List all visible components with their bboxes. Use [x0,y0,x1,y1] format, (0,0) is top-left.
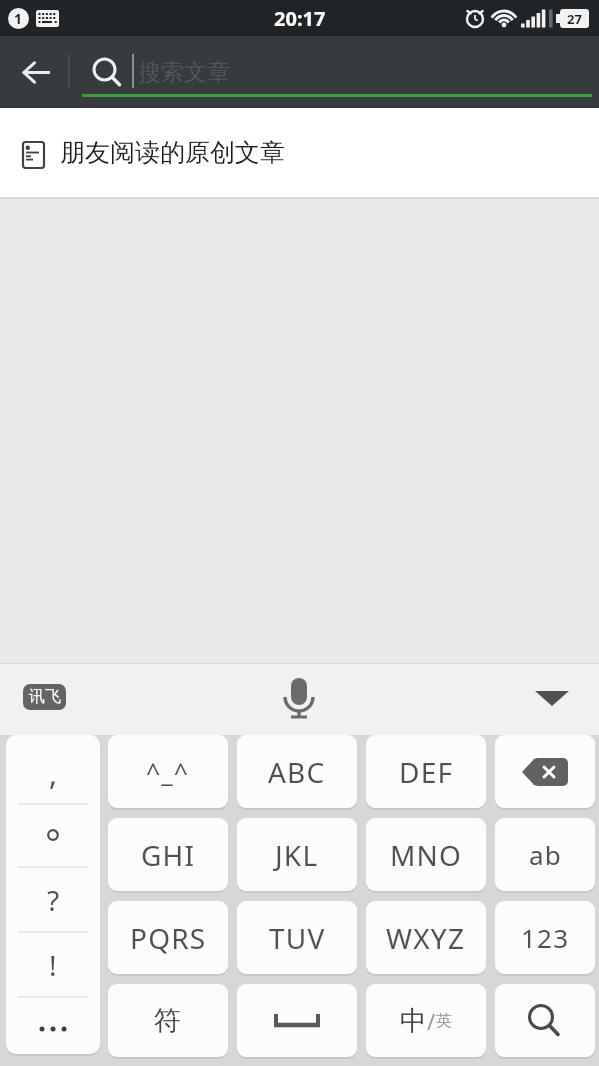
staticText: TUV [269,919,326,957]
staticText: 英 [436,1011,452,1031]
button[interactable]: TUV [237,901,357,974]
staticText: / [427,1006,436,1036]
staticText: ! [49,946,57,984]
staticText: WXYZ [386,919,466,957]
staticText: 20:17 [274,5,326,32]
staticText: 27 [567,10,582,28]
staticText: DEF [399,753,454,791]
button[interactable]: 讯飞 [23,684,66,710]
staticText: 朋友阅读的原创文章 [60,137,285,168]
button[interactable]: 符 [108,984,228,1057]
button[interactable]: ab [495,818,595,891]
button[interactable]: JKL [237,818,357,891]
button[interactable]: PQRS [108,901,228,974]
button[interactable]: 朋友阅读的原创文章 [0,108,599,197]
button[interactable]: ABC [237,735,357,808]
staticText: JKL [275,836,319,874]
staticText: GHI [141,836,196,874]
staticText: 123 [521,920,570,955]
staticText: 1 [14,9,23,28]
button[interactable]: 中 [366,984,486,1057]
button[interactable]: GHI [108,818,228,891]
button[interactable] [520,671,584,727]
staticText: MNO [390,836,463,874]
staticText: PQRS [130,919,207,957]
staticText: ab [529,837,562,872]
button[interactable] [495,735,595,808]
button[interactable]: , [6,735,100,1054]
button[interactable]: ^_^ [108,735,228,808]
button[interactable]: MNO [366,818,486,891]
button[interactable]: DEF [366,735,486,808]
button[interactable] [237,984,357,1057]
staticText: 搜索文章 [138,58,230,87]
staticText: ABC [268,753,326,791]
staticText: 符 [154,1004,183,1038]
button[interactable]: 123 [495,901,595,974]
staticText: ? [47,881,60,919]
button[interactable] [495,984,595,1057]
staticText: ^_^ [146,755,190,789]
button[interactable] [8,82,64,138]
staticText: 讯飞 [29,687,61,707]
staticText: 中 [400,1004,427,1038]
button[interactable] [271,671,327,727]
staticText: , [49,753,58,794]
button[interactable]: WXYZ [366,901,486,974]
